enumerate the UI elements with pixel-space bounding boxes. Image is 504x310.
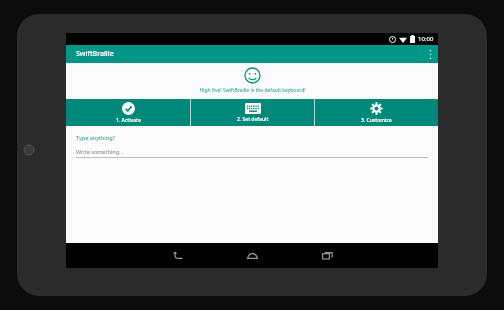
staticText: Type anything? bbox=[76, 134, 115, 141]
staticText: 10:00 bbox=[418, 35, 434, 43]
staticText: 1. Activate bbox=[116, 117, 141, 124]
staticText: High five! SwiftBraille is the default k… bbox=[199, 87, 306, 94]
staticText: 3. Customize bbox=[361, 117, 392, 124]
button[interactable]: More options bbox=[422, 45, 438, 63]
button[interactable]: Home bbox=[241, 243, 263, 268]
staticText: 2. Set default bbox=[237, 116, 269, 123]
staticText: Write something... bbox=[76, 148, 124, 155]
button[interactable]: 2. Set default bbox=[191, 99, 314, 126]
button[interactable]: Back bbox=[166, 243, 188, 268]
button[interactable]: 3. Customize bbox=[315, 99, 438, 126]
staticText: SwiftBraille bbox=[76, 49, 114, 59]
button[interactable]: Recent apps bbox=[316, 243, 338, 268]
button[interactable]: 1. Activate bbox=[66, 99, 190, 126]
button[interactable]: Write something... bbox=[76, 148, 428, 158]
